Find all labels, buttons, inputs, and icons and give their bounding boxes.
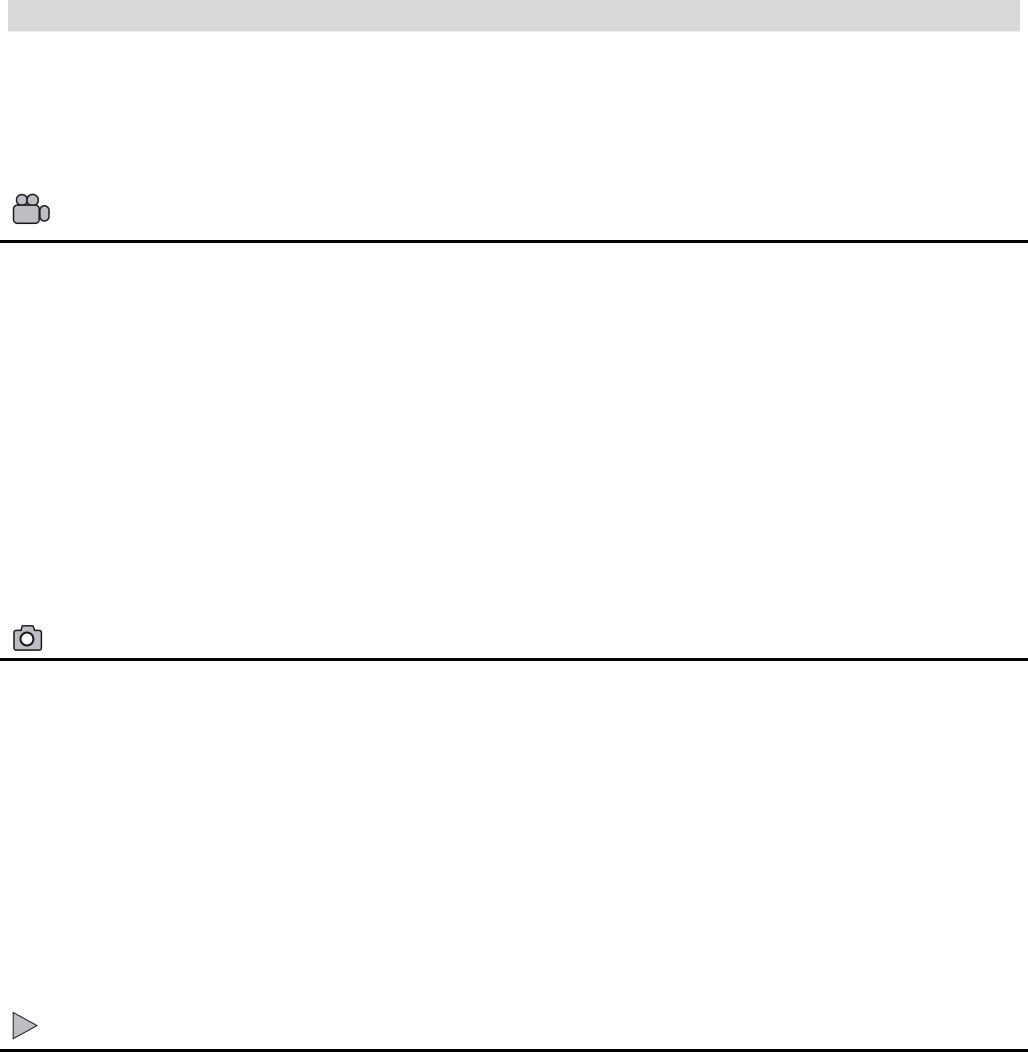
button[interactable]: Play xyxy=(13,1012,38,1039)
button[interactable]: Video xyxy=(13,194,49,224)
button[interactable]: Camera xyxy=(13,625,42,651)
